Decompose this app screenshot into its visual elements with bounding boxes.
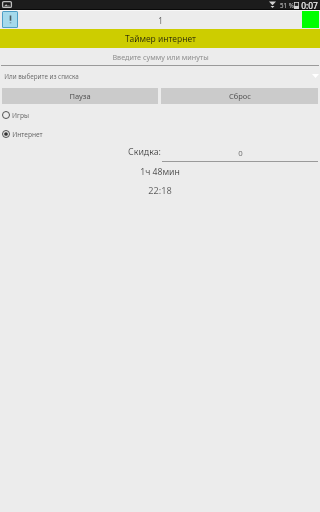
- button[interactable]: Menu: [3, 12, 17, 27]
- staticText: 1ч 48мин: [140, 166, 180, 178]
- staticText: 22:18: [148, 184, 172, 197]
- staticText: Игры: [12, 111, 29, 120]
- staticText: Сброс: [229, 91, 251, 101]
- button[interactable]: 0: [162, 145, 318, 161]
- staticText: 0:07: [301, 0, 318, 10]
- staticText: Пауза: [69, 91, 91, 101]
- button[interactable]: Или выберите из списка: [0, 69, 320, 81]
- staticText: 1: [158, 15, 163, 26]
- staticText: Введите сумму или минуты: [112, 52, 209, 62]
- staticText: Или выберите из списка: [4, 72, 79, 81]
- button[interactable]: Интернет: [0, 127, 320, 141]
- staticText: Таймер интернет: [125, 33, 196, 45]
- staticText: Интернет: [12, 130, 43, 139]
- button[interactable]: Пауза: [2, 88, 158, 104]
- button[interactable]: Игры: [0, 108, 320, 122]
- button[interactable]: Введите сумму или минуты: [0, 48, 320, 65]
- staticText: 0: [238, 148, 243, 159]
- button[interactable]: Сброс: [161, 88, 318, 104]
- staticText: Скидка:: [128, 146, 161, 158]
- staticText: 51 %: [280, 1, 294, 9]
